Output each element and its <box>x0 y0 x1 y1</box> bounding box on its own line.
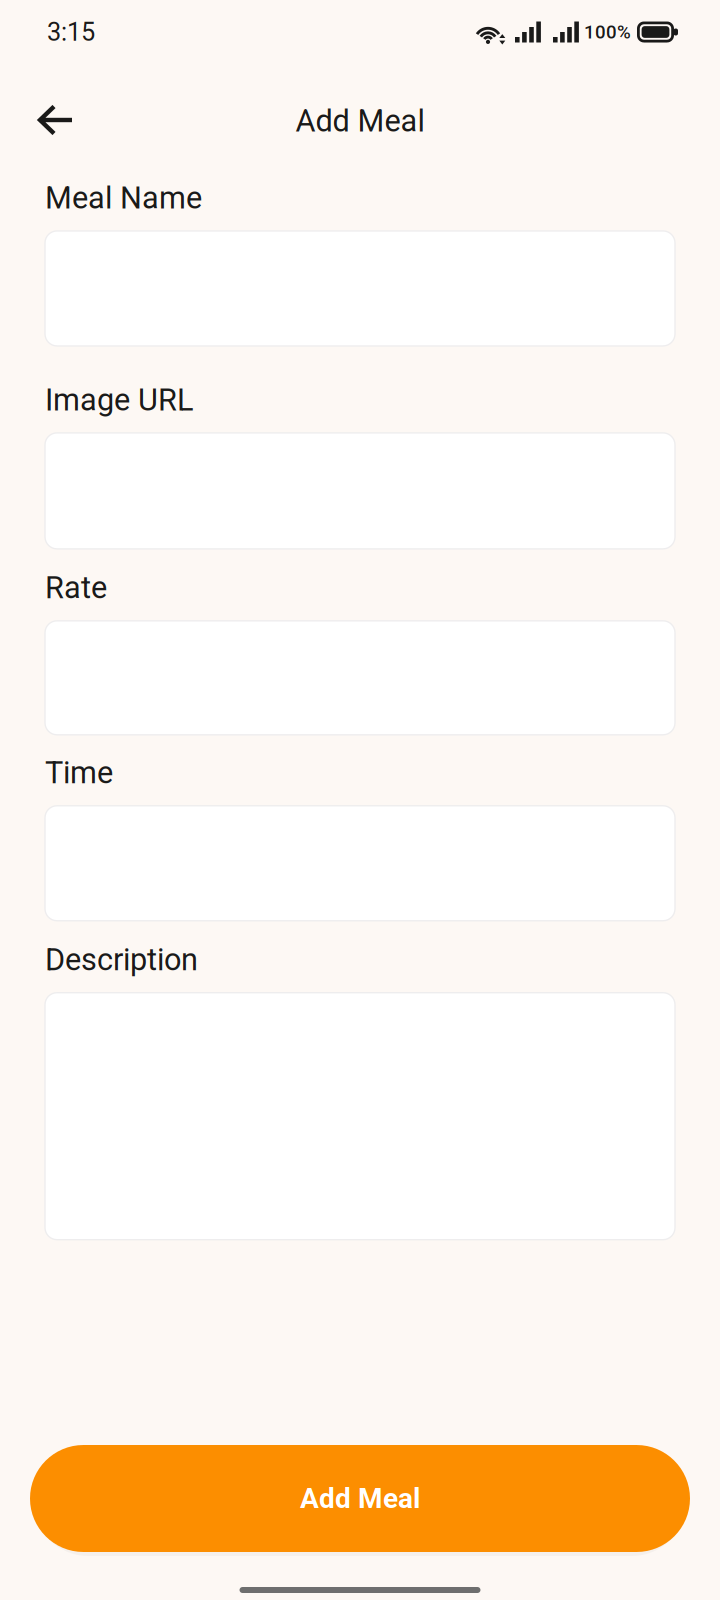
button[interactable]: Back <box>24 91 86 149</box>
button[interactable]: Add Meal <box>30 1439 690 1558</box>
staticText: Rate <box>45 570 107 606</box>
staticText: Meal Name <box>45 180 202 216</box>
staticText: Image URL <box>45 382 194 418</box>
staticText: Description <box>45 942 198 978</box>
staticText: Time <box>45 755 113 791</box>
staticText: Add Meal <box>300 1482 420 1515</box>
staticText: 100% <box>584 21 631 43</box>
staticText: Add Meal <box>295 103 424 139</box>
staticText: 3:15 <box>47 17 95 47</box>
